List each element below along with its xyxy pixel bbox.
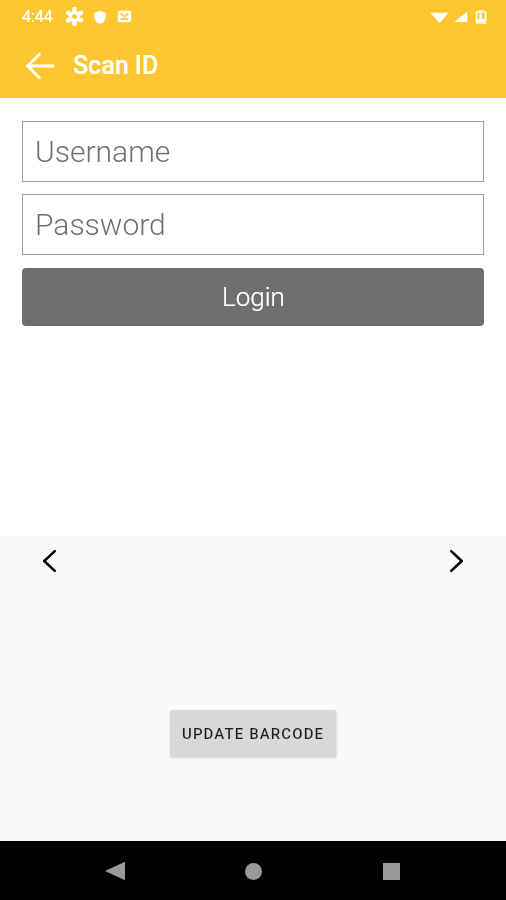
- button[interactable]: Next: [435, 540, 477, 582]
- staticText: Password: [35, 207, 166, 242]
- button[interactable]: Previous: [29, 540, 71, 582]
- button[interactable]: Login: [22, 268, 484, 326]
- button[interactable]: Back: [92, 848, 138, 894]
- staticText: UPDATE BARCODE: [182, 725, 325, 743]
- button[interactable]: UPDATE BARCODE: [170, 710, 336, 757]
- button[interactable]: Home: [230, 848, 276, 894]
- staticText: Username: [35, 134, 171, 169]
- button[interactable]: Username: [22, 121, 484, 182]
- button[interactable]: Navigate up: [16, 42, 64, 90]
- button[interactable]: Password: [22, 194, 484, 255]
- staticText: Scan ID: [73, 51, 159, 80]
- staticText: 4:44: [22, 7, 53, 26]
- staticText: Login: [222, 282, 285, 312]
- button[interactable]: Recent apps: [368, 848, 414, 894]
